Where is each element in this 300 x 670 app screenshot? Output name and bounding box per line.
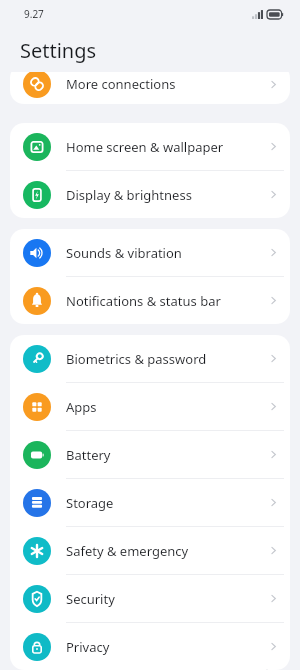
button[interactable]: Display & brightness — [10, 171, 290, 218]
staticText: Notifications & status bar — [66, 292, 267, 310]
other: Open — [267, 448, 280, 461]
staticText: Settings — [20, 37, 97, 64]
staticText: Display & brightness — [66, 186, 267, 204]
button[interactable]: Sounds & vibration — [10, 229, 290, 276]
other: Open — [267, 496, 280, 509]
button[interactable]: Battery — [10, 431, 290, 478]
staticText: Security — [66, 590, 267, 608]
button[interactable]: Security — [10, 575, 290, 622]
button[interactable]: Home screen & wallpaper — [10, 123, 290, 170]
staticText: Battery — [66, 446, 267, 464]
button[interactable]: Apps — [10, 383, 290, 430]
button[interactable]: Biometrics & password — [10, 335, 290, 382]
button[interactable]: Safety & emergency — [10, 527, 290, 574]
other: Open — [267, 352, 280, 365]
staticText: Safety & emergency — [66, 542, 267, 560]
other: Open — [267, 188, 280, 201]
staticText: Storage — [66, 494, 267, 512]
other: Open — [267, 400, 280, 413]
other: Open — [267, 592, 280, 605]
staticText: Sounds & vibration — [66, 244, 267, 262]
button[interactable]: Storage — [10, 479, 290, 526]
staticText: Privacy — [66, 638, 267, 656]
staticText: Home screen & wallpaper — [66, 138, 267, 156]
other: Open — [267, 544, 280, 557]
button[interactable]: More connections — [10, 72, 290, 104]
button[interactable]: Privacy — [10, 623, 290, 670]
staticText: Biometrics & password — [66, 350, 267, 368]
other: Open — [267, 78, 280, 91]
staticText: Apps — [66, 398, 267, 416]
other: Open — [267, 294, 280, 307]
other: Open — [267, 140, 280, 153]
other: Open — [267, 640, 280, 653]
button[interactable]: Notifications & status bar — [10, 277, 290, 324]
staticText: 9.27 — [24, 7, 44, 21]
other: Open — [267, 246, 280, 259]
staticText: More connections — [66, 75, 267, 93]
